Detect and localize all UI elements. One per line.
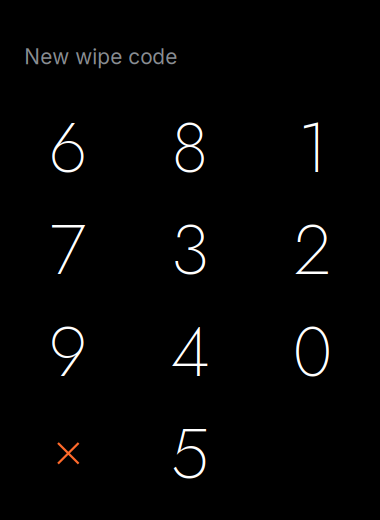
button[interactable]: 1 bbox=[251, 97, 373, 199]
staticText: 1 bbox=[298, 98, 327, 198]
staticText: 3 bbox=[171, 200, 209, 300]
staticText: 0 bbox=[293, 302, 332, 402]
staticText: 6 bbox=[49, 98, 87, 198]
button[interactable]: 0 bbox=[251, 301, 373, 403]
staticText: 5 bbox=[170, 404, 209, 504]
button[interactable]: 4 bbox=[129, 301, 251, 403]
staticText: New wipe code bbox=[24, 44, 177, 69]
button[interactable]: 6 bbox=[7, 97, 129, 199]
staticText: 2 bbox=[294, 200, 331, 300]
staticText: 8 bbox=[171, 98, 208, 198]
button[interactable]: 2 bbox=[251, 199, 373, 301]
button[interactable]: Cancel bbox=[7, 403, 129, 505]
button[interactable]: 8 bbox=[129, 97, 251, 199]
button[interactable]: 5 bbox=[129, 403, 251, 505]
button[interactable]: 7 bbox=[7, 199, 129, 301]
staticText: 4 bbox=[170, 302, 209, 402]
button[interactable]: 9 bbox=[7, 301, 129, 403]
button[interactable]: 3 bbox=[129, 199, 251, 301]
staticText: 9 bbox=[49, 302, 87, 402]
staticText: 7 bbox=[50, 200, 86, 300]
